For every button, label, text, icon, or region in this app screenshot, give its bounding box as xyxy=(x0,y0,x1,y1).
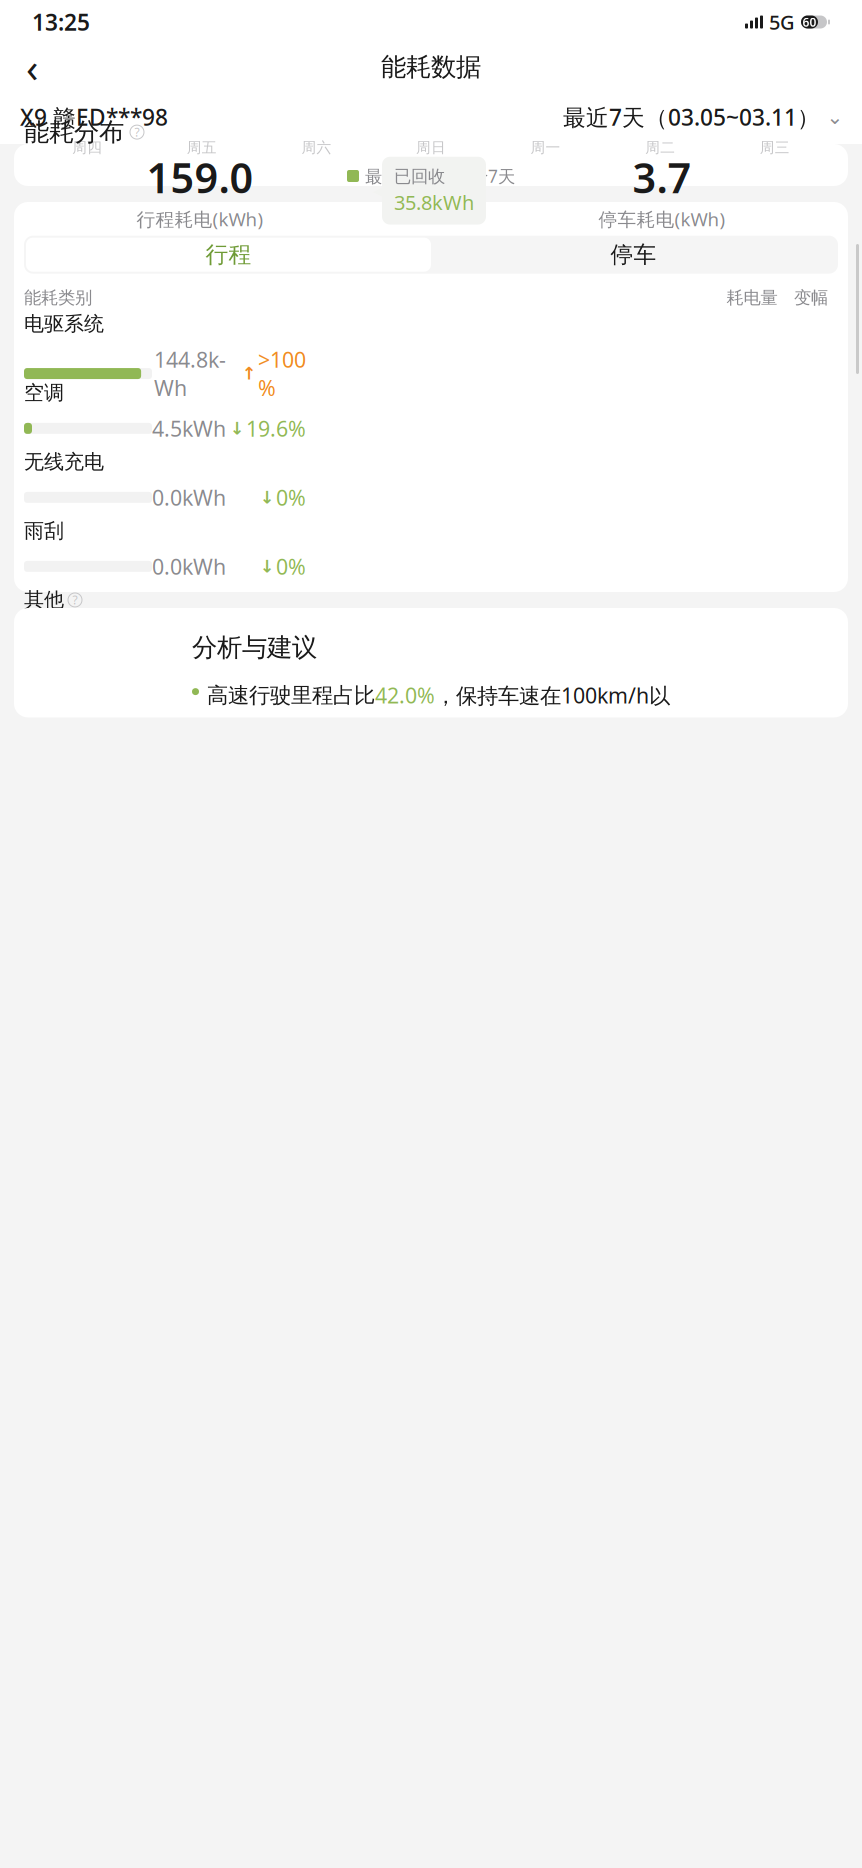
staticText: ，保持车速在100km/h以 xyxy=(435,681,670,709)
staticText: ◀ xyxy=(373,182,385,200)
staticText: ‹ xyxy=(26,40,38,93)
staticText: 无线充电 xyxy=(24,450,104,474)
staticText: 0% xyxy=(276,552,306,580)
staticText: ↓ xyxy=(260,557,275,576)
staticText: 能耗数据 xyxy=(381,51,481,82)
staticText: 5G xyxy=(769,9,795,35)
staticText: ↑ xyxy=(242,364,257,383)
button[interactable]: 停车 xyxy=(431,238,836,272)
staticText: 周二 xyxy=(645,138,675,156)
staticText: 电驱系统 xyxy=(24,312,104,336)
staticText: 空调 xyxy=(24,381,64,405)
staticText: ↓ xyxy=(230,419,245,438)
staticText: X9 赣ED***98 xyxy=(20,102,168,132)
staticText: 变幅 xyxy=(794,287,828,308)
staticText: 周五 xyxy=(187,138,217,156)
staticText: 9.7kWh xyxy=(152,621,226,649)
staticText: 13:25 xyxy=(32,7,90,37)
staticText: 行程耗电(kWh) xyxy=(136,207,263,231)
button[interactable]: 最近7天（03.05~03.11） xyxy=(563,102,842,132)
button[interactable]: X9 赣ED***98 xyxy=(20,102,168,132)
staticText: 雨刮 xyxy=(24,519,64,543)
staticText: 0.0kWh xyxy=(152,483,226,511)
staticText: 耗电量 xyxy=(726,287,777,308)
staticText: 已回收 xyxy=(394,166,445,187)
staticText: 19.6% xyxy=(246,414,306,442)
staticText: 60 xyxy=(802,14,816,30)
staticText: >100% xyxy=(258,345,306,402)
staticText: (注：与上个7天数据对比) xyxy=(324,663,537,687)
staticText: 能耗类别 xyxy=(24,287,92,308)
staticText: 周一 xyxy=(531,138,561,156)
button[interactable]: Back xyxy=(12,47,52,87)
staticText: ↑ xyxy=(230,626,245,645)
staticText: 行程 xyxy=(205,241,251,268)
button[interactable]: 行程 xyxy=(26,238,431,272)
staticText: 144.8kWh xyxy=(154,345,226,402)
staticText: 最近7天 xyxy=(365,164,426,187)
staticText: 周日 xyxy=(416,138,446,156)
staticText: 51.6% xyxy=(246,621,306,649)
staticText: 能耗分布 xyxy=(24,116,124,148)
staticText: 0% xyxy=(276,483,306,511)
staticText: 分析与建议 xyxy=(192,632,317,663)
staticText: 0.0kWh xyxy=(152,552,226,580)
staticText: 35.8kWh xyxy=(394,189,474,216)
staticText: ⌄ xyxy=(826,106,843,128)
staticText: 最近7天（03.05~03.11） xyxy=(563,102,820,132)
staticText: 3.7 xyxy=(632,150,691,205)
staticText: 周三 xyxy=(760,138,790,156)
staticText: 停车耗电(kWh) xyxy=(598,207,725,231)
staticText: 周四 xyxy=(72,138,102,156)
staticText: 高速行驶里程占比 xyxy=(207,682,375,708)
staticText: 周六 xyxy=(301,138,331,156)
staticText: 4.5kWh xyxy=(152,414,226,442)
staticText: 其他 xyxy=(24,588,64,612)
staticText: 42.0% xyxy=(375,681,435,709)
staticText: 停车 xyxy=(610,241,656,268)
staticText: 159.0 xyxy=(146,150,253,205)
staticText: ? xyxy=(134,124,139,140)
staticText: ↓ xyxy=(260,488,275,507)
staticText: 上个7天 xyxy=(454,164,515,187)
staticText: ? xyxy=(72,592,77,608)
